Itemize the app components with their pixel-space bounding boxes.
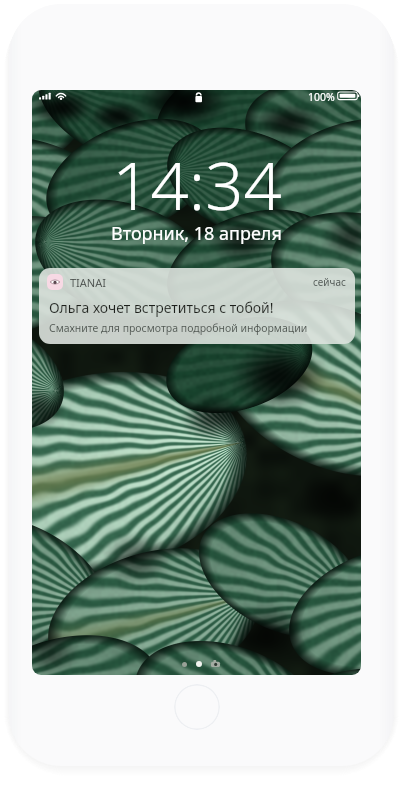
button[interactable]: Camera — [211, 660, 220, 668]
button[interactable]: Page 1 — [182, 662, 187, 667]
staticText: Вторник, 18 апреля — [111, 221, 282, 246]
staticText: Ольга хочет встретиться с тобой! — [49, 298, 274, 317]
button[interactable]: Page 2 — [196, 661, 202, 667]
staticText: TIANAI — [70, 275, 106, 290]
staticText: 100% — [308, 90, 335, 104]
staticText: 14:34 — [112, 138, 282, 229]
button[interactable]: TIANAI — [39, 268, 355, 344]
staticText: Смахните для просмотра подробной информа… — [49, 321, 308, 335]
staticText: сейчас — [313, 275, 346, 289]
button[interactable]: Home — [174, 684, 220, 730]
